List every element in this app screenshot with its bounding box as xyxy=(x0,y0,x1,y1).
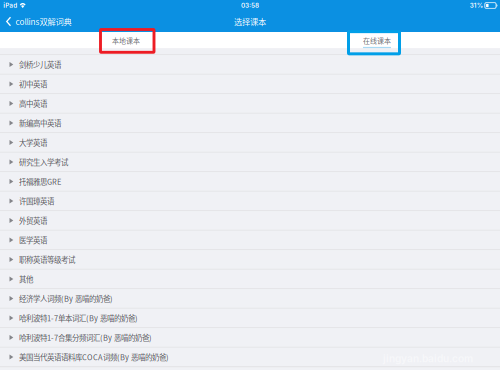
button[interactable]: 初中英语 xyxy=(0,75,500,94)
button[interactable]: 高中英语 xyxy=(0,94,500,114)
staticText: 剑桥少儿英语 xyxy=(19,59,61,70)
button[interactable]: 大学英语 xyxy=(0,133,500,153)
staticText: 在线课本 xyxy=(363,35,391,45)
button[interactable]: 本地课本 xyxy=(100,32,152,48)
staticText: 托福雅思GRE xyxy=(19,176,61,187)
button[interactable]: 研究生入学考试 xyxy=(0,153,500,172)
staticText: 美国当代英语语料库COCA词频(By 恶喵的奶爸) xyxy=(19,352,169,362)
button[interactable]: 托福雅思GRE xyxy=(0,172,500,192)
staticText: 其他 xyxy=(19,274,33,284)
staticText: 许国璋英语 xyxy=(19,196,54,206)
button[interactable]: 剑桥少儿英语 xyxy=(0,55,500,75)
button[interactable]: 新编高中英语 xyxy=(0,114,500,133)
staticText: 31% xyxy=(470,2,483,9)
staticText: 新编高中英语 xyxy=(19,118,61,128)
staticText: 本地课本 xyxy=(112,35,140,45)
staticText: 医学英语 xyxy=(19,235,47,245)
button[interactable]: 在线课本 xyxy=(351,32,403,48)
staticText: 研究生入学考试 xyxy=(19,157,68,167)
staticText: 职称英语等级考试 xyxy=(19,254,75,265)
staticText: 03:58 xyxy=(241,2,259,9)
staticText: 高中英语 xyxy=(19,98,47,109)
button[interactable]: 医学英语 xyxy=(0,231,500,250)
button[interactable]: 外贸英语 xyxy=(0,211,500,231)
button[interactable]: 其他 xyxy=(0,270,500,289)
button[interactable]: 美国当代英语语料库COCA词频(By 恶喵的奶爸) xyxy=(0,348,500,367)
staticText: 选择课本 xyxy=(234,15,266,27)
button[interactable]: 哈利波特1-7单本词汇(By 恶喵的奶爸) xyxy=(0,309,500,328)
button[interactable]: collins双解词典 xyxy=(0,11,72,31)
staticText: 外贸英语 xyxy=(19,215,47,226)
button[interactable]: 经济学人词频(By 恶喵的奶爸) xyxy=(0,289,500,309)
staticText: 大学英语 xyxy=(19,137,47,148)
staticText: 初中英语 xyxy=(19,79,47,89)
staticText: 哈利波特1-7合集分频词汇(By 恶喵的奶爸) xyxy=(19,332,152,343)
button[interactable]: 许国璋英语 xyxy=(0,192,500,211)
staticText: collins双解词典 xyxy=(16,15,72,27)
staticText: 哈利波特1-7单本词汇(By 恶喵的奶爸) xyxy=(19,313,138,323)
staticText: iPad xyxy=(3,2,17,9)
button[interactable]: 职称英语等级考试 xyxy=(0,250,500,270)
button[interactable]: 哈利波特1-7合集分频词汇(By 恶喵的奶爸) xyxy=(0,328,500,348)
staticText: 经济学人词频(By 恶喵的奶爸) xyxy=(19,293,113,304)
